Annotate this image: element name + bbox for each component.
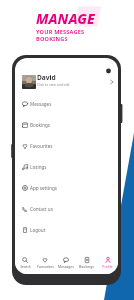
other: Open profile	[110, 79, 114, 85]
staticText: Bookings	[30, 122, 51, 128]
staticText: Logout	[30, 227, 46, 233]
staticText: Favourites	[30, 143, 53, 149]
staticText: Messages	[30, 101, 52, 107]
staticText: MANAGE	[36, 9, 95, 28]
staticText: Contact us	[30, 206, 53, 212]
button[interactable]: Search	[15, 252, 35, 274]
staticText: David	[37, 73, 56, 82]
staticText: YOUR MESSAGES	[36, 28, 85, 36]
button[interactable]: Profile	[97, 252, 118, 274]
staticText: Search	[20, 264, 31, 269]
button[interactable]: Favourites	[15, 135, 118, 156]
staticText: BOOKINGS	[36, 35, 68, 43]
staticText: Favourites	[37, 264, 54, 269]
button[interactable]: Bookings	[76, 252, 97, 274]
button[interactable]: Listings	[15, 156, 118, 177]
button[interactable]: Messages	[55, 252, 76, 274]
button[interactable]: Favourites	[35, 252, 55, 274]
staticText: App settings	[30, 185, 57, 191]
button[interactable]: App settings	[15, 177, 118, 198]
staticText: Profile	[102, 264, 113, 269]
button[interactable]: Logout	[15, 219, 118, 240]
staticText: Click to view and edit	[37, 82, 70, 86]
button[interactable]: David	[15, 71, 118, 93]
button[interactable]: Contact us	[15, 198, 118, 219]
staticText: Listings	[30, 164, 47, 170]
button[interactable]: Bookings	[15, 114, 118, 135]
button[interactable]: Messages	[15, 93, 118, 114]
staticText: Messages	[58, 264, 74, 269]
staticText: Bookings	[79, 264, 94, 269]
